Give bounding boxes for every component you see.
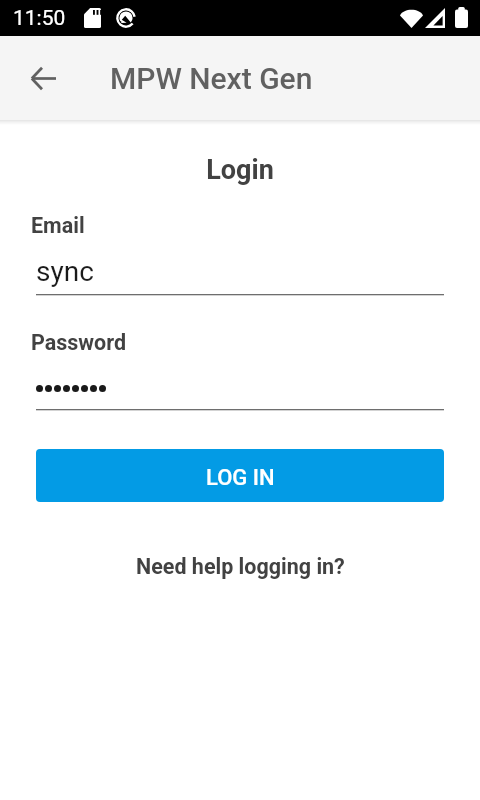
staticText: 11:50: [13, 6, 66, 31]
staticText: MPW Next Gen: [110, 61, 313, 96]
staticText: Email: [31, 213, 85, 238]
button[interactable]: LOG IN: [36, 449, 444, 502]
button[interactable]: Need help logging in?: [128, 548, 353, 585]
button[interactable]: sync: [31, 255, 444, 296]
button[interactable]: Password: [31, 370, 444, 411]
button[interactable]: Back: [19, 54, 67, 102]
staticText: sync: [36, 255, 94, 288]
staticText: Login: [0, 154, 480, 186]
staticText: Need help logging in?: [136, 554, 345, 579]
staticText: Password: [31, 330, 127, 355]
staticText: LOG IN: [206, 465, 275, 491]
